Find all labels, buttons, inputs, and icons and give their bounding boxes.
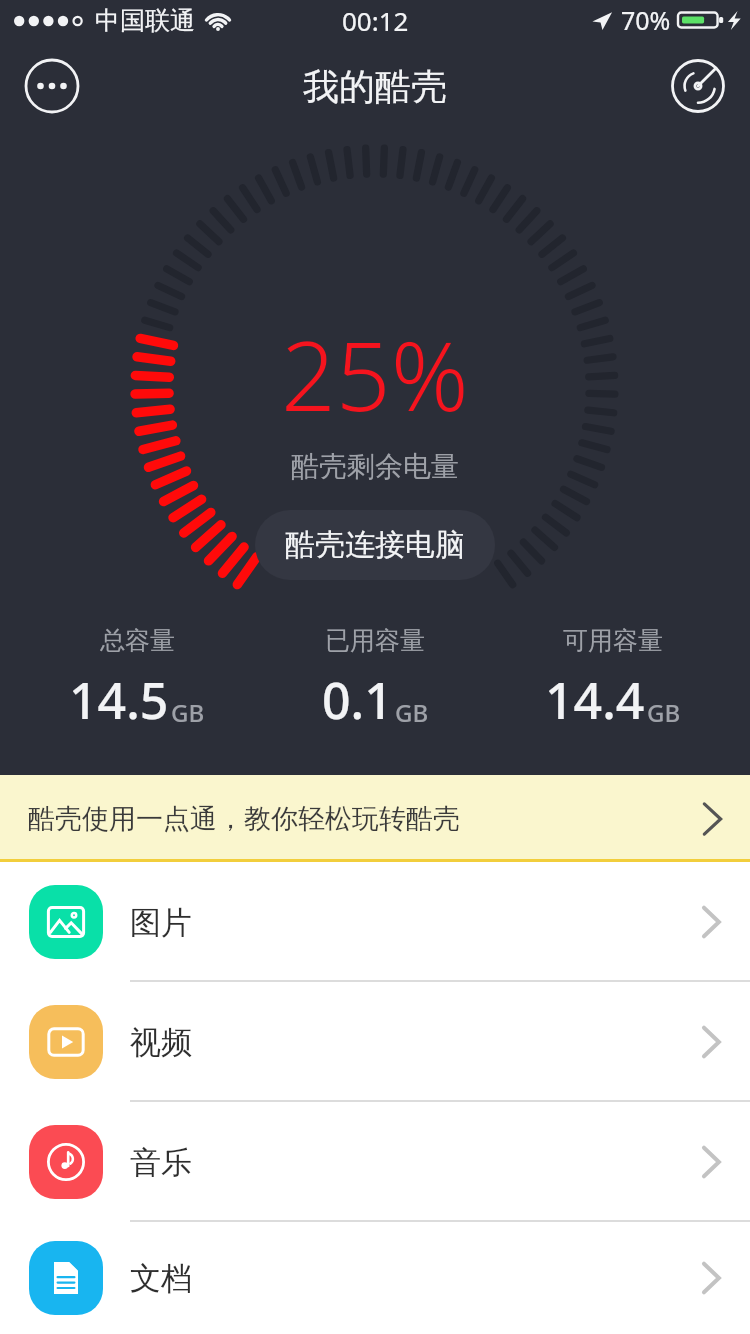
staticText: 25% <box>281 308 469 439</box>
staticText: 70% <box>621 3 671 37</box>
button[interactable]: 图片 <box>0 862 750 982</box>
staticText: 我的酷壳 <box>303 64 447 109</box>
button[interactable]: 视频 <box>0 982 750 1102</box>
button[interactable]: 酷壳连接电脑 <box>255 510 495 580</box>
staticText: GB <box>395 696 429 729</box>
staticText: 中国联通 <box>95 5 195 36</box>
staticText: GB <box>171 696 205 729</box>
staticText: 音乐 <box>130 1143 192 1182</box>
staticText: 酷壳连接电脑 <box>285 526 465 564</box>
staticText: 视频 <box>130 1023 192 1062</box>
staticText: 00:12 <box>342 3 409 38</box>
staticText: 文档 <box>130 1259 192 1298</box>
staticText: 酷壳使用一点通，教你轻松玩转酷壳 <box>28 802 460 836</box>
button[interactable]: 文档 <box>0 1222 750 1334</box>
button[interactable]: 音乐 <box>0 1102 750 1222</box>
staticText: 酷壳剩余电量 <box>291 449 459 484</box>
button[interactable]: 酷壳使用一点通，教你轻松玩转酷壳 <box>0 775 750 862</box>
staticText: 总容量 <box>100 625 175 656</box>
staticText: 14.4 <box>545 666 645 734</box>
staticText: 已用容量 <box>325 625 425 656</box>
button[interactable]: More options <box>22 56 82 116</box>
staticText: 14.5 <box>69 666 169 734</box>
staticText: 0.1 <box>322 666 393 734</box>
staticText: GB <box>647 696 681 729</box>
button[interactable]: Music disc <box>668 56 728 116</box>
staticText: 图片 <box>130 903 192 942</box>
staticText: 可用容量 <box>563 625 663 656</box>
